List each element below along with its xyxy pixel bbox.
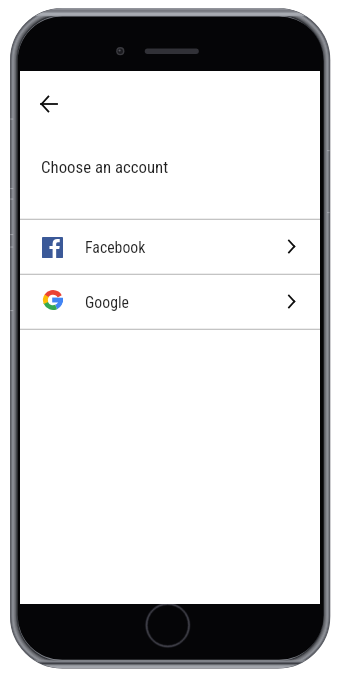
staticText: Google — [85, 293, 130, 312]
staticText: Facebook — [85, 238, 146, 257]
button[interactable]: Back — [29, 84, 69, 124]
staticText: Choose an account — [41, 157, 169, 177]
button[interactable]: Facebook — [20, 220, 320, 273]
button[interactable]: Google — [20, 275, 320, 328]
